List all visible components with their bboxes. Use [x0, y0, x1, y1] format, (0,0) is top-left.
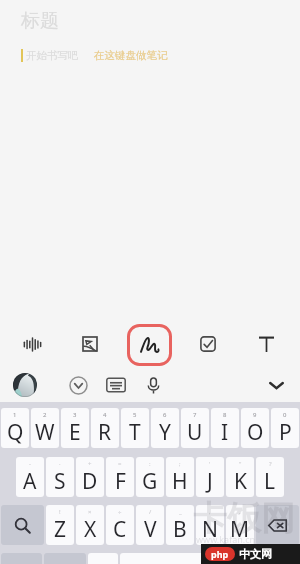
button[interactable]: ×: [76, 505, 104, 545]
staticText: 8: [223, 411, 227, 419]
button[interactable]: 4: [91, 408, 119, 448]
staticText: 6: [163, 411, 167, 419]
button[interactable]: /: [136, 505, 164, 545]
staticText: F: [115, 467, 126, 496]
button[interactable]: _: [166, 505, 194, 545]
button[interactable]: Backspace: [256, 505, 299, 545]
staticText: G: [142, 467, 158, 496]
staticText: V: [144, 515, 157, 544]
staticText: 中文网: [239, 547, 272, 561]
button[interactable]: 7: [181, 408, 209, 448]
staticText: 5: [133, 411, 137, 419]
staticText: ;: [179, 460, 181, 468]
button[interactable]: 5: [121, 408, 149, 448]
button[interactable]: More input methods: [67, 374, 89, 396]
button[interactable]: 0: [271, 408, 299, 448]
button[interactable]: ;: [166, 457, 194, 497]
staticText: M: [230, 515, 250, 544]
staticText: E: [69, 418, 81, 447]
button[interactable]: 3: [61, 408, 89, 448]
button[interactable]: Enter: [249, 553, 299, 564]
staticText: P: [279, 418, 292, 447]
staticText: 0: [283, 411, 287, 419]
staticText: L: [264, 467, 276, 496]
staticText: 2: [43, 411, 47, 419]
staticText: N: [202, 515, 218, 544]
staticText: Y: [159, 418, 171, 447]
button[interactable]: Handwriting: [127, 324, 172, 366]
staticText: R: [98, 418, 112, 447]
staticText: Z: [54, 515, 67, 544]
button[interactable]: ,: [196, 505, 224, 545]
staticText: 3: [73, 411, 77, 419]
staticText: 7: [193, 411, 197, 419]
button[interactable]: Checklist: [185, 321, 231, 367]
staticText: J: [207, 467, 213, 496]
staticText: 4: [103, 411, 107, 419]
button[interactable]: Text style: [243, 321, 289, 367]
staticText: 标题: [21, 9, 59, 33]
staticText: www.kafan.cn: [196, 533, 256, 545]
staticText: T: [129, 418, 141, 447]
staticText: ?: [269, 460, 272, 468]
staticText: 9: [253, 411, 257, 419]
staticText: 1: [13, 411, 17, 419]
button[interactable]: 9: [241, 408, 269, 448]
staticText: Q: [7, 418, 24, 447]
button[interactable]: +: [76, 457, 104, 497]
button[interactable]: .: [226, 505, 254, 545]
button[interactable]: 1: [1, 408, 29, 448]
staticText: /: [149, 508, 152, 516]
button[interactable]: Voice note: [9, 321, 55, 367]
button[interactable]: Search: [1, 505, 44, 545]
button[interactable]: Insert image: [67, 321, 113, 367]
button[interactable]: ·: [46, 457, 74, 497]
staticText: ‘: [209, 460, 211, 468]
staticText: =: [118, 460, 122, 468]
button[interactable]: ÷: [106, 505, 134, 545]
staticText: .: [239, 508, 241, 516]
button[interactable]: Voice input: [142, 374, 164, 396]
button[interactable]: !: [46, 505, 74, 545]
button[interactable]: Keyboard layout: [105, 374, 127, 396]
button[interactable]: -: [16, 457, 44, 497]
staticText: A: [23, 467, 37, 496]
staticText: U: [187, 418, 203, 447]
staticText: +: [88, 460, 92, 468]
staticText: _: [179, 508, 182, 516]
button[interactable]: :: [136, 457, 164, 497]
staticText: 在这键盘做笔记: [94, 49, 168, 62]
button[interactable]: [120, 553, 215, 564]
staticText: W: [35, 418, 55, 447]
button[interactable]: 2: [31, 408, 59, 448]
button[interactable]: ?: [256, 457, 284, 497]
button[interactable]: Hide keyboard: [264, 373, 288, 397]
button[interactable]: ‘: [196, 457, 224, 497]
staticText: 开始书写吧: [26, 49, 79, 62]
staticText: ·: [59, 460, 61, 468]
staticText: ": [239, 460, 242, 468]
staticText: H: [172, 467, 188, 496]
button[interactable]: .: [217, 553, 247, 564]
staticText: C: [113, 515, 127, 544]
button[interactable]: 8: [211, 408, 239, 448]
staticText: php: [211, 548, 229, 560]
staticText: I: [221, 418, 229, 447]
button[interactable]: Account: [13, 373, 37, 397]
staticText: -: [29, 460, 31, 468]
staticText: X: [84, 515, 97, 544]
staticText: 卡饭网: [193, 497, 295, 540]
button[interactable]: =: [106, 457, 134, 497]
staticText: ÷: [118, 508, 122, 516]
staticText: D: [82, 467, 98, 496]
staticText: !: [59, 508, 61, 516]
button[interactable]: 6: [151, 408, 179, 448]
staticText: O: [247, 418, 264, 447]
staticText: :: [149, 460, 151, 468]
button[interactable]: ": [226, 457, 254, 497]
staticText: ,: [209, 508, 211, 516]
